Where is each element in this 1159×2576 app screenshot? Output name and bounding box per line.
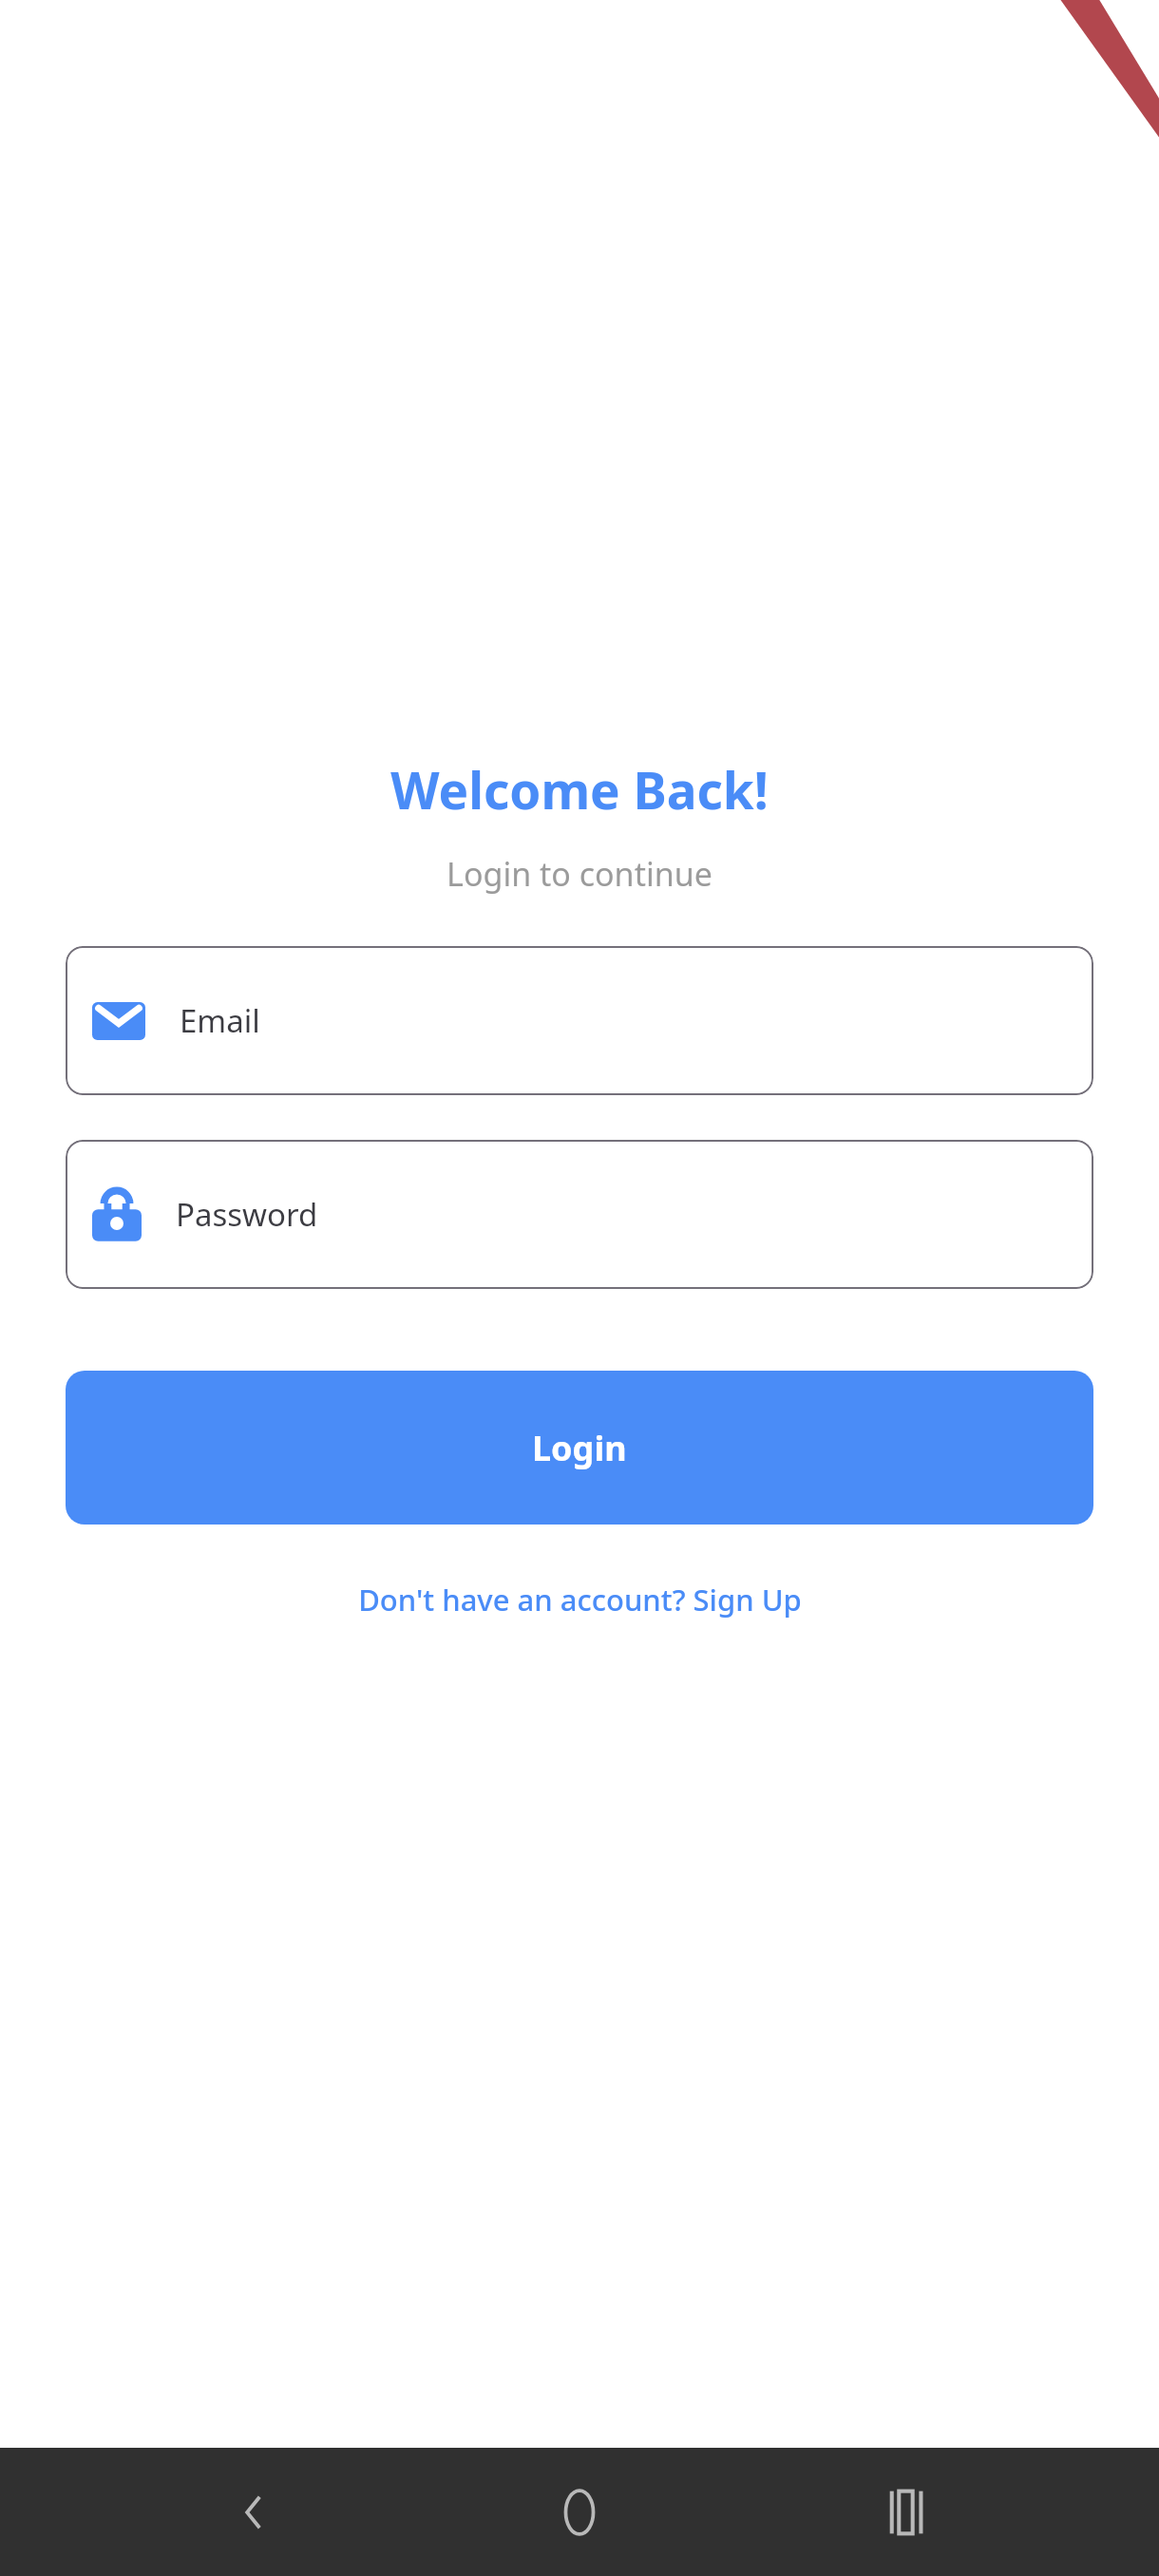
button[interactable]: Email xyxy=(66,946,1093,1095)
staticText: Welcome Back! xyxy=(390,755,769,824)
button[interactable]: Don't have an account? Sign Up xyxy=(347,1572,813,1627)
staticText: Don't have an account? Sign Up xyxy=(358,1580,802,1619)
button[interactable]: Recent apps xyxy=(834,2448,977,2576)
button[interactable]: Password xyxy=(66,1140,1093,1289)
button[interactable]: Back xyxy=(183,2448,326,2576)
staticText: Login xyxy=(532,1425,627,1471)
staticText: DEBUG xyxy=(1050,69,1131,150)
button[interactable]: Login xyxy=(66,1371,1093,1525)
staticText: Password xyxy=(176,1193,318,1236)
button[interactable]: Home xyxy=(508,2448,651,2576)
staticText: Login to continue xyxy=(446,852,712,896)
staticText: Email xyxy=(180,999,260,1042)
